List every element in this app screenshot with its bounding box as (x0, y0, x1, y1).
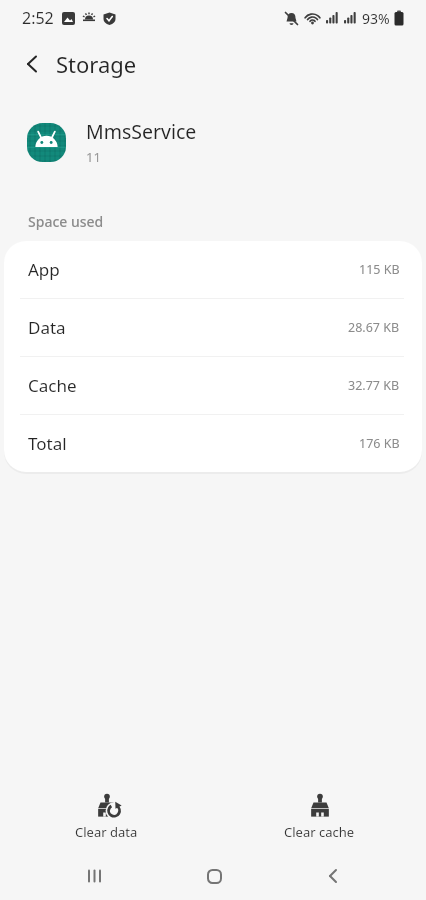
staticText: 2:52 (22, 7, 54, 29)
staticText: 28.67 KB (348, 319, 400, 336)
button[interactable]: Total (4, 415, 422, 472)
button[interactable] (63, 852, 127, 900)
staticText: MmsService (86, 118, 197, 145)
staticText: Clear cache (284, 823, 355, 841)
staticText: Storage (56, 49, 137, 79)
button[interactable]: Cache (4, 357, 422, 414)
button[interactable]: Clear cache (213, 784, 426, 852)
staticText: Clear data (75, 823, 138, 841)
button[interactable]: Clear data (0, 784, 213, 852)
staticText: 32.77 KB (348, 377, 400, 394)
staticText: App (28, 258, 60, 281)
staticText: Total (28, 432, 67, 455)
staticText: Space used (28, 212, 104, 231)
staticText: Cache (28, 374, 77, 397)
staticText: 11 (86, 148, 101, 166)
staticText: 115 KB (359, 261, 400, 278)
staticText: 93% (362, 9, 390, 28)
button[interactable] (301, 852, 365, 900)
button[interactable]: Data (4, 299, 422, 356)
button[interactable]: App (4, 241, 422, 298)
button[interactable] (8, 40, 56, 88)
staticText: Data (28, 316, 66, 339)
button[interactable] (182, 852, 246, 900)
staticText: 176 KB (359, 435, 400, 452)
